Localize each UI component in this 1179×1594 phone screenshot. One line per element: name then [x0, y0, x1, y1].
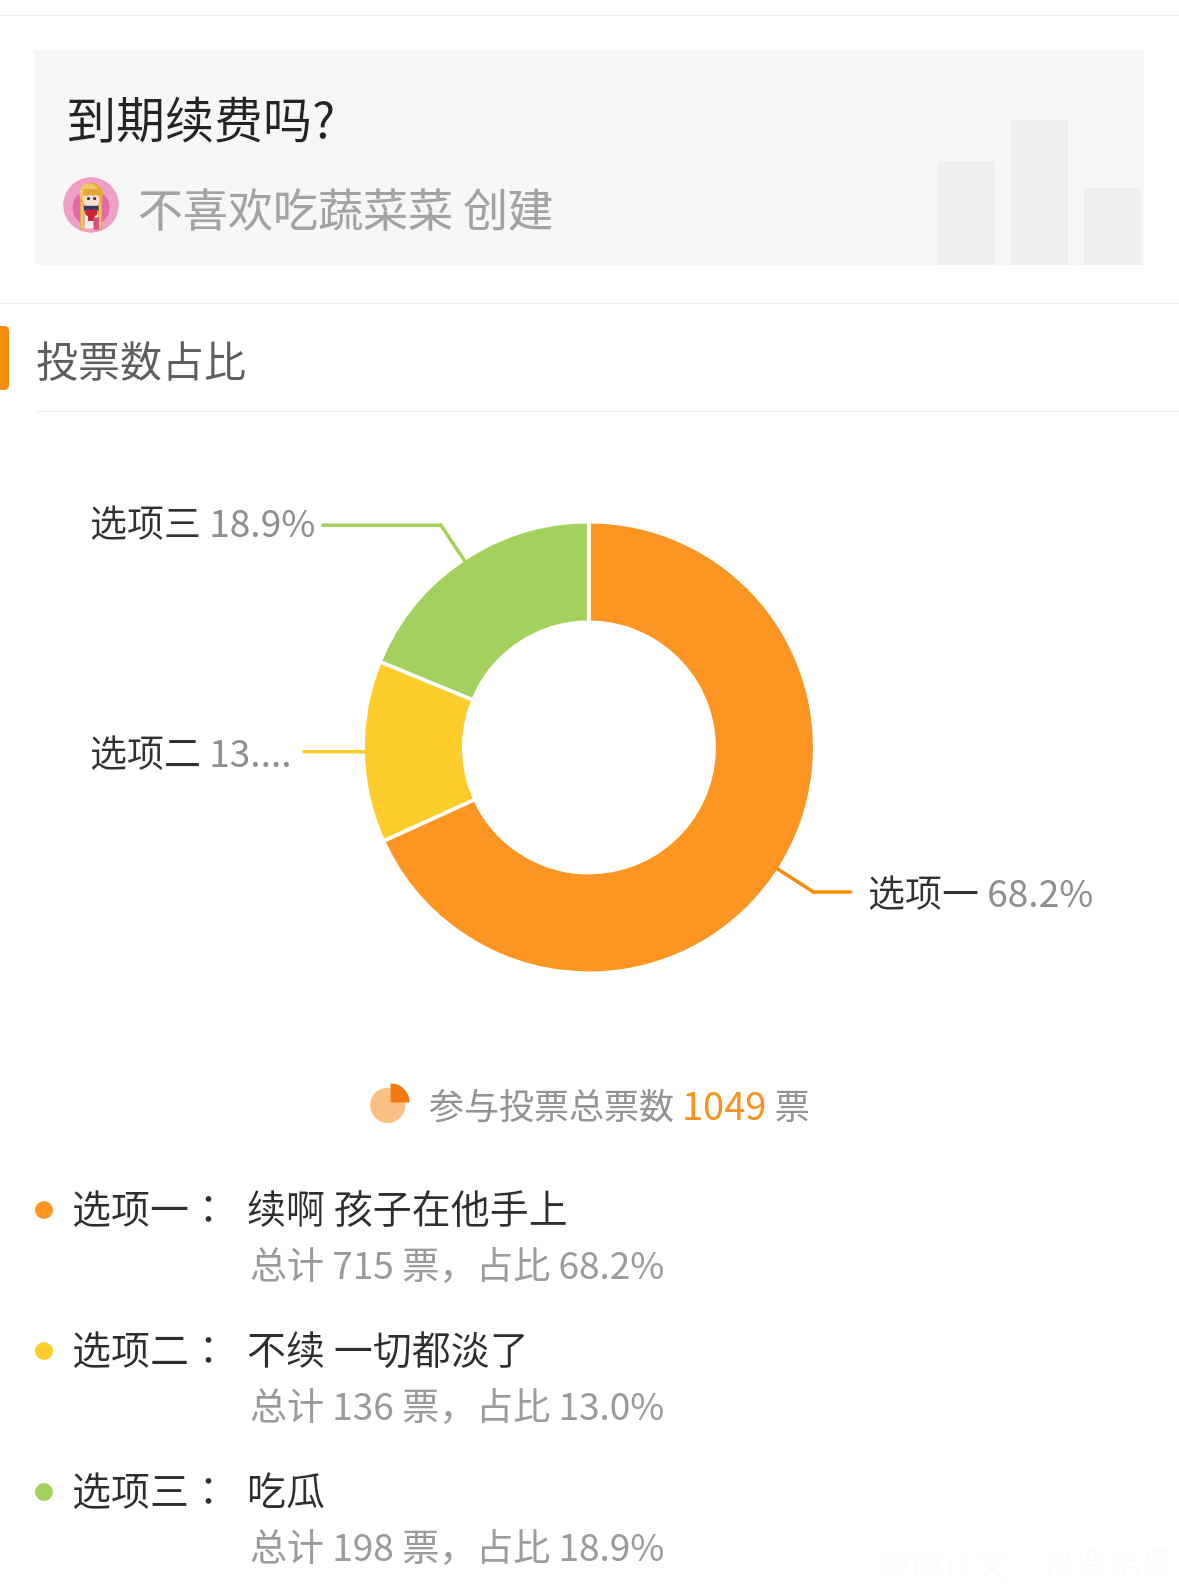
staticText: 选项二: [90, 724, 201, 778]
staticText: 选项一：: [72, 1178, 229, 1234]
other: Avatar: [63, 177, 119, 233]
button[interactable]: 选项三：: [0, 1461, 1179, 1594]
staticText: 18.9%: [201, 494, 316, 548]
button[interactable]: 选项二：: [0, 1320, 1179, 1461]
button[interactable]: Votes: [0, 1076, 1179, 1131]
button[interactable]: 投票数占比: [0, 304, 1179, 412]
button[interactable]: 到期续费吗?: [35, 50, 1144, 265]
staticText: 参与投票总票数: [429, 1078, 682, 1129]
staticText: 选项一: [868, 864, 979, 918]
staticText: 选项二：: [72, 1319, 229, 1375]
staticText: 不续 一切都淡了: [247, 1319, 529, 1375]
button[interactable]: 选项一：: [0, 1179, 1179, 1320]
staticText: 投票数占比: [36, 328, 247, 389]
staticText: 到期续费吗?: [67, 81, 336, 152]
staticText: 票: [767, 1078, 810, 1129]
staticText: 13....: [201, 724, 292, 778]
staticText: 不喜欢吃蔬菜菜 创建: [138, 175, 554, 235]
staticText: 总计 136 票，占比 13.0%: [250, 1377, 665, 1431]
staticText: 总计 198 票，占比 18.9%: [250, 1518, 665, 1572]
staticText: 选项三：: [72, 1460, 229, 1516]
staticText: 总计 715 票，占比 68.2%: [250, 1236, 665, 1290]
staticText: 续啊 孩子在他手上: [247, 1178, 568, 1234]
staticText: 68.2%: [979, 864, 1094, 918]
staticText: 1049: [682, 1076, 767, 1131]
staticText: 选项三: [90, 494, 201, 548]
staticText: 吃瓜: [247, 1460, 326, 1516]
other: Votes: [370, 1085, 408, 1123]
